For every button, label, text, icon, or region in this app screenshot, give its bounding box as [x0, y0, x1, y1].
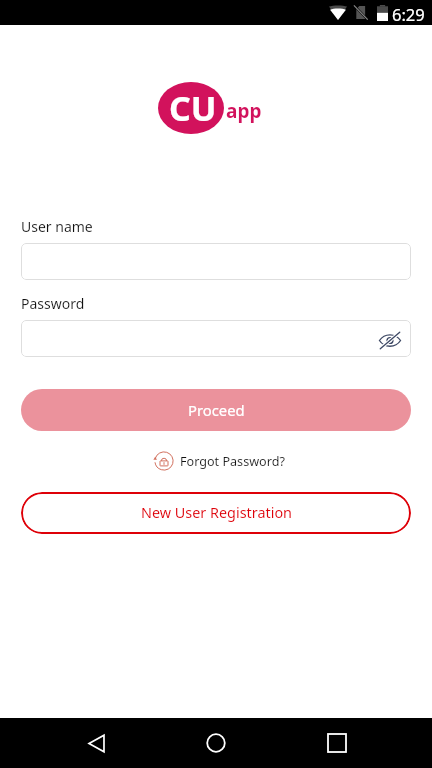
button[interactable]: Recents [312, 718, 362, 768]
button[interactable]: Home [191, 718, 241, 768]
staticText: New User Registration [141, 503, 292, 523]
button[interactable]: Show password [377, 327, 403, 353]
staticText: app [226, 98, 262, 124]
button[interactable]: Proceed [21, 389, 411, 431]
staticText: CU [169, 85, 217, 131]
staticText: Proceed [188, 400, 245, 420]
button[interactable]: New User Registration [21, 492, 411, 534]
staticText: Password [21, 294, 85, 313]
button[interactable]: Back [71, 718, 121, 768]
button[interactable] [21, 243, 411, 280]
button[interactable]: Show password [21, 320, 411, 357]
staticText: User name [21, 217, 93, 236]
staticText: 6:29 [392, 3, 425, 25]
button[interactable]: Forgot Password? [153, 449, 285, 473]
staticText: Forgot Password? [180, 453, 285, 470]
